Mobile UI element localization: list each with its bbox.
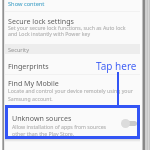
staticText: Unknown sources xyxy=(12,113,72,123)
staticText: Locate and control your device remotely … xyxy=(8,87,133,94)
button[interactable]: Unknown sources toggle xyxy=(120,118,138,128)
button[interactable]: Unknown sources xyxy=(5,105,140,138)
button[interactable]: Fingerprints xyxy=(5,55,140,75)
staticText: and Lock instantly with Power key xyxy=(8,30,91,37)
button[interactable]: Secure lock settings xyxy=(5,12,140,44)
button[interactable]: Find My Mobile xyxy=(5,75,140,105)
staticText: Allow installation of apps from sources xyxy=(12,123,107,130)
staticText: Set your secure lock functions, such as … xyxy=(8,24,126,31)
staticText: Show content xyxy=(8,0,45,8)
staticText: Secure lock settings xyxy=(8,16,74,26)
staticText: Find My Mobile xyxy=(8,78,59,88)
staticText: Security xyxy=(8,46,29,54)
staticText: other than the Play Store. xyxy=(12,130,75,137)
staticText: Samsung account. xyxy=(8,95,53,102)
staticText: Fingerprints xyxy=(8,61,49,71)
staticText: Tap here xyxy=(96,59,137,73)
button[interactable]: Show content xyxy=(5,0,140,11)
